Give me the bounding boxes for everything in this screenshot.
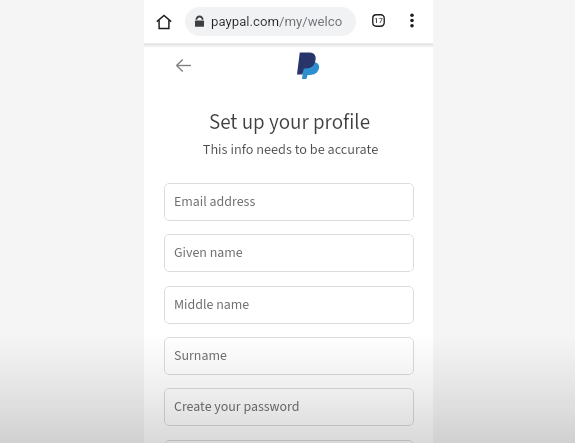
staticText: Middle name [174, 295, 250, 315]
staticText: 17 [374, 16, 384, 25]
button[interactable]: Surname [164, 337, 414, 375]
button[interactable]: Given name [164, 234, 414, 272]
button[interactable]: Home [150, 8, 177, 35]
staticText: Set up your profile [145, 107, 434, 137]
button[interactable]: Tabs [365, 7, 392, 34]
button[interactable]: More options [398, 7, 425, 34]
staticText: Surname [174, 346, 227, 366]
staticText: This info needs to be accurate [146, 139, 435, 159]
button[interactable]: Middle name [164, 286, 414, 324]
staticText: Given name [174, 243, 243, 263]
staticText: paypal.com/my/welco [211, 14, 343, 29]
button[interactable]: Create your password [164, 388, 414, 426]
staticText: Create your password [174, 397, 300, 417]
button[interactable]: Back [170, 52, 197, 79]
button[interactable]: Email address [164, 183, 414, 221]
button[interactable]: paypal.com/my/welco [185, 7, 356, 36]
staticText: Email address [174, 192, 256, 212]
button[interactable]: Confirm password [164, 440, 414, 443]
